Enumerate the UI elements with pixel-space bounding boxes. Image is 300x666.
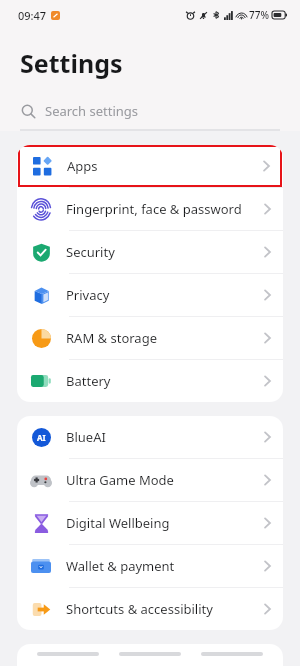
button[interactable]: Fingerprint, face & password bbox=[17, 188, 283, 230]
staticText: BlueAI bbox=[66, 428, 264, 446]
staticText: AI bbox=[37, 432, 46, 443]
button[interactable]: Shortcuts & accessibility bbox=[17, 588, 283, 630]
staticText: Digital Wellbeing bbox=[66, 514, 264, 532]
button[interactable]: Security bbox=[17, 231, 283, 273]
button[interactable]: Apps bbox=[18, 145, 282, 187]
button[interactable]: Ultra Game Mode bbox=[17, 459, 283, 501]
staticText: 77% bbox=[249, 8, 269, 22]
staticText: Ultra Game Mode bbox=[66, 471, 264, 489]
staticText: Search settings bbox=[45, 102, 139, 120]
staticText: RAM & storage bbox=[66, 329, 264, 347]
staticText: Security bbox=[66, 243, 264, 261]
staticText: Fingerprint, face & password bbox=[66, 200, 264, 218]
staticText: Battery bbox=[66, 372, 264, 390]
button[interactable]: Wallet & payment bbox=[17, 545, 283, 587]
button[interactable]: Battery bbox=[17, 360, 283, 402]
staticText: Privacy bbox=[66, 286, 264, 304]
staticText: 09:47 bbox=[18, 8, 47, 23]
staticText: Shortcuts & accessibility bbox=[66, 600, 264, 618]
button[interactable]: Privacy bbox=[17, 274, 283, 316]
button[interactable]: AI bbox=[17, 416, 283, 458]
staticText: Apps bbox=[67, 157, 263, 175]
staticText: Wallet & payment bbox=[66, 557, 264, 575]
button[interactable]: Search settings bbox=[21, 102, 300, 120]
staticText: Settings bbox=[20, 46, 123, 80]
button[interactable]: Digital Wellbeing bbox=[17, 502, 283, 544]
button[interactable]: RAM & storage bbox=[17, 317, 283, 359]
